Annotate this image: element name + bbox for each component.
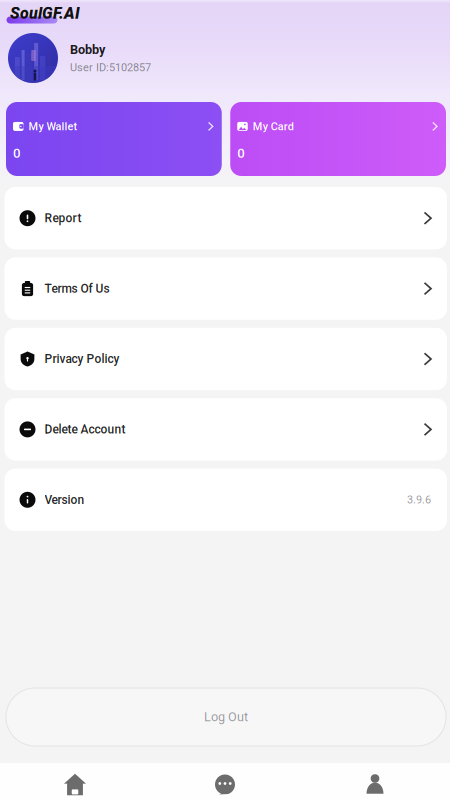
button[interactable]: Messages bbox=[150, 763, 300, 800]
staticText: Delete Account bbox=[44, 422, 125, 436]
staticText: Report bbox=[44, 211, 81, 225]
button[interactable]: Report bbox=[4, 187, 447, 249]
staticText: 0 bbox=[237, 145, 245, 161]
staticText: Bobby bbox=[70, 42, 105, 57]
staticText: My Card bbox=[253, 120, 294, 133]
staticText: Version bbox=[44, 493, 84, 507]
button[interactable]: Privacy Policy bbox=[4, 328, 447, 390]
staticText: User ID:5102857 bbox=[70, 61, 151, 74]
staticText: Privacy Policy bbox=[44, 352, 119, 366]
button[interactable]: My Card bbox=[230, 102, 446, 176]
button[interactable]: Version bbox=[4, 469, 447, 531]
button[interactable]: Home bbox=[0, 763, 150, 800]
button[interactable]: Profile bbox=[300, 763, 450, 800]
staticText: 0 bbox=[13, 145, 21, 161]
button[interactable]: My Wallet bbox=[6, 102, 222, 176]
button[interactable]: Delete Account bbox=[4, 398, 447, 461]
button[interactable]: Log Out bbox=[6, 688, 446, 746]
staticText: Log Out bbox=[204, 710, 248, 724]
staticText: SoulGF.AI bbox=[10, 4, 80, 23]
staticText: Terms Of Us bbox=[44, 282, 109, 296]
staticText: 3.9.6 bbox=[407, 493, 431, 506]
staticText: My Wallet bbox=[28, 120, 77, 133]
button[interactable]: Terms Of Us bbox=[4, 257, 447, 320]
